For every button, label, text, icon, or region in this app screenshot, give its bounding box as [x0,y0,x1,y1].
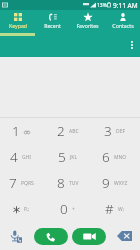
button[interactable]: More options [124,37,140,53]
button[interactable]: 9 [93,170,140,196]
staticText: 8 [57,174,65,192]
staticText: W; [118,206,124,213]
button[interactable]: 4 [0,144,46,170]
button[interactable]: 2 [46,118,93,144]
button[interactable]: # [93,196,140,222]
staticText: 7 [9,174,17,192]
staticText: 3 [104,122,112,140]
button[interactable]: Recent [35,13,70,41]
staticText: P,; [24,206,30,213]
staticText: PQRS [21,180,34,187]
button[interactable]: 1 [0,118,46,144]
staticText: Contacts [112,22,134,29]
staticText: JKL [70,154,78,161]
button[interactable]: Backspace [113,225,135,247]
staticText: TUV [69,180,79,187]
button[interactable]: Voice search [5,225,27,247]
button[interactable]: P,; [0,196,46,222]
staticText: Keypad [9,22,27,29]
staticText: 2 [57,122,65,140]
button[interactable]: Favorites [70,13,105,41]
button[interactable]: Contacts [105,13,140,41]
staticText: Recent [44,22,61,29]
staticText: # [105,200,114,218]
staticText: 6 [102,148,110,166]
staticText: 9 [102,174,110,192]
button[interactable]: 7 [0,170,46,196]
staticText: Favorites [76,22,99,29]
button[interactable]: 0 [46,196,93,222]
button[interactable]: 6 [93,144,140,170]
staticText: 0 [60,200,68,218]
staticText: 13% [97,2,107,9]
staticText: 4 [10,148,18,166]
button[interactable]: Keypad [0,13,35,41]
button[interactable]: 3 [93,118,140,144]
button[interactable]: Video call [72,228,106,245]
button[interactable]: 8 [46,170,93,196]
button[interactable]: Call [34,228,68,245]
staticText: 1 [12,122,20,140]
staticText: MNO [114,154,127,161]
staticText: WXYZ [114,180,128,187]
staticText: ABC [69,128,79,135]
button[interactable]: 5 [46,144,93,170]
staticText: 9:11 AM [113,1,138,10]
staticText: DEF [116,128,126,135]
staticText: GHI [22,154,32,161]
staticText: 5 [58,148,66,166]
staticText: + [72,206,75,213]
